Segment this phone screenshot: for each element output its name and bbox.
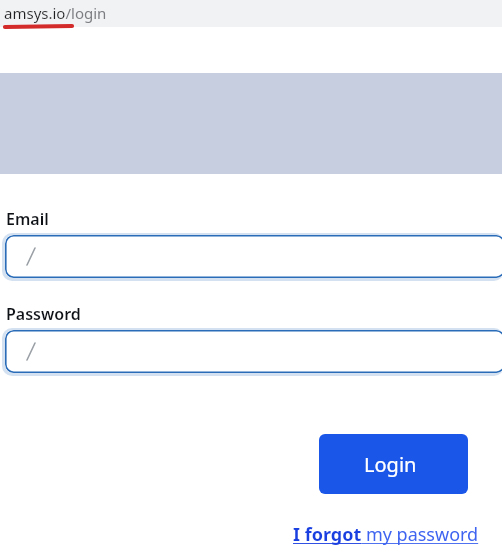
staticText: I forgot my password <box>293 522 479 547</box>
staticText: Login <box>364 451 417 478</box>
button[interactable]: Email input <box>5 235 502 278</box>
staticText: amsys.io/login <box>4 3 107 23</box>
button[interactable]: I forgot my password <box>293 522 498 550</box>
button[interactable]: Login <box>319 434 468 494</box>
staticText: Email <box>6 208 49 230</box>
button[interactable]: Address bar <box>0 0 502 27</box>
staticText: Password <box>6 303 81 325</box>
button[interactable]: Password input <box>5 330 502 373</box>
